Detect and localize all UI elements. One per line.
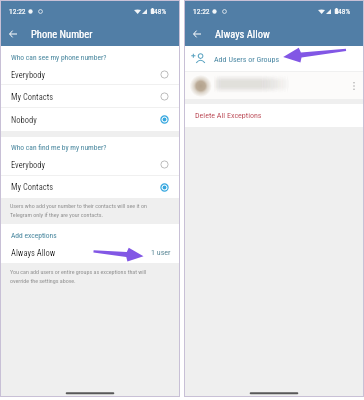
staticText: 12:22 bbox=[193, 7, 210, 16]
staticText: Phone Number bbox=[31, 28, 93, 40]
staticText: override the settings above. bbox=[10, 277, 76, 284]
staticText: Nobody bbox=[11, 115, 37, 125]
button[interactable]: My Contacts bbox=[1, 85, 179, 108]
staticText: Add Users or Groups bbox=[214, 55, 280, 64]
button[interactable]: Back bbox=[187, 24, 207, 44]
other: More options bbox=[353, 82, 355, 90]
staticText: 48% bbox=[338, 7, 351, 16]
staticText: Delete All Exceptions bbox=[195, 111, 262, 120]
staticText: 1 user bbox=[151, 248, 171, 257]
staticText: My Contacts bbox=[11, 182, 54, 192]
button[interactable]: My Contacts bbox=[1, 176, 179, 198]
staticText: You can add users or entire groups as ex… bbox=[10, 268, 147, 275]
button[interactable]: Always Allow bbox=[1, 242, 179, 263]
staticText: Add exceptions bbox=[11, 231, 57, 240]
button[interactable]: Delete All Exceptions bbox=[185, 104, 363, 127]
staticText: Telegram only if they are your contacts. bbox=[10, 211, 104, 218]
button[interactable]: Back bbox=[3, 24, 23, 44]
staticText: Users who add your number to their conta… bbox=[10, 202, 147, 209]
button[interactable]: Nobody bbox=[1, 108, 179, 131]
staticText: Always Allow bbox=[215, 28, 270, 40]
staticText: Who can find me by my number? bbox=[11, 143, 107, 152]
staticText: Everybody bbox=[11, 70, 46, 80]
staticText: My Contacts bbox=[11, 92, 54, 102]
button[interactable]: Everybody bbox=[1, 64, 179, 85]
staticText: 12:22 bbox=[9, 7, 26, 16]
staticText: Who can see my phone number? bbox=[11, 53, 107, 62]
button[interactable]: Add Users or Groups bbox=[185, 46, 363, 72]
staticText: 48% bbox=[154, 7, 167, 16]
staticText: Always Allow bbox=[11, 248, 56, 258]
staticText: Everybody bbox=[11, 160, 46, 170]
button[interactable]: Everybody bbox=[1, 153, 179, 176]
button[interactable]: More options bbox=[185, 72, 363, 99]
